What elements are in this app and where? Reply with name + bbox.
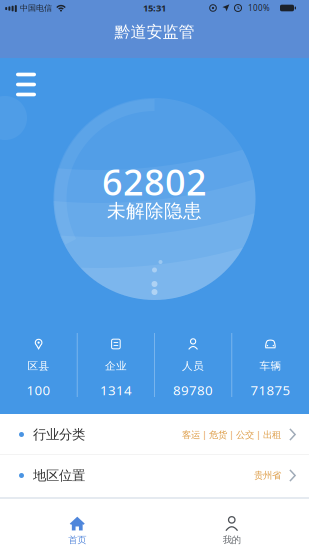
staticText: 黔道安监管 (114, 22, 194, 42)
button[interactable]: 我的 (192, 510, 272, 550)
staticText: 100 (27, 381, 51, 399)
button[interactable]: 首页 (37, 510, 117, 550)
staticText: 贵州省 (254, 470, 281, 481)
staticText: 企业 (105, 359, 127, 372)
staticText: 未解除隐患 (107, 199, 202, 222)
staticText: 人员 (182, 359, 204, 372)
button[interactable]: 行业分类 (0, 414, 309, 455)
staticText: 区县 (28, 359, 50, 372)
staticText: 62802 (102, 158, 207, 205)
button[interactable]: 地区位置 (0, 455, 309, 496)
staticText: 我的 (223, 534, 241, 546)
staticText: 中国电信 (20, 3, 52, 13)
staticText: 89780 (173, 381, 213, 399)
staticText: 100% (248, 3, 270, 13)
staticText: 车辆 (259, 359, 281, 372)
staticText: 地区位置 (33, 467, 85, 484)
staticText: 71875 (250, 381, 290, 399)
staticText: 首页 (68, 534, 86, 546)
staticText: 1314 (100, 381, 132, 399)
staticText: 15:31 (143, 2, 166, 14)
staticText: 行业分类 (33, 426, 85, 443)
staticText: 客运 | 危货 | 公交 | 出租 (182, 428, 281, 441)
button[interactable]: 菜单 (9, 67, 43, 101)
